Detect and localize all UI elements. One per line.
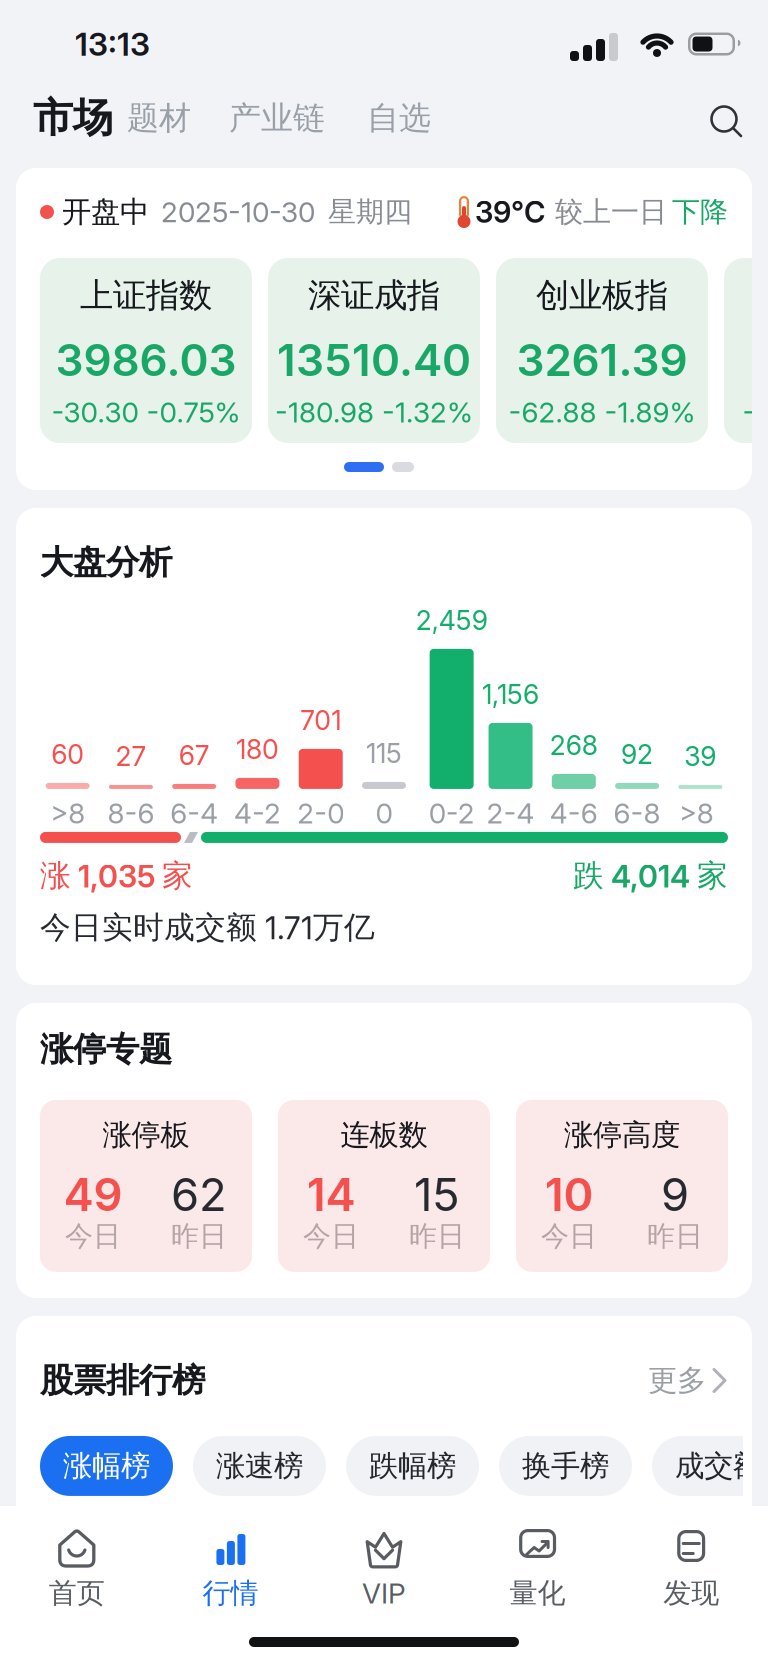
staticText: 涨停板 [102, 1117, 189, 1153]
staticText: 量化 [510, 1576, 566, 1610]
staticText: 13510.40 [277, 334, 471, 386]
staticText: 今日 [303, 1219, 359, 1253]
staticText: 2-4 [486, 797, 534, 830]
staticText: 9 [661, 1168, 689, 1221]
staticText: 39°C [475, 195, 545, 229]
staticText: 星期四 [328, 195, 412, 229]
staticText: 较上一日 [555, 195, 667, 229]
button[interactable]: 深证成指 [268, 258, 480, 443]
staticText: 连板数 [340, 1117, 427, 1153]
button[interactable]: 产业链 [229, 98, 325, 138]
staticText: -62.88 -1.89% [508, 396, 695, 429]
button[interactable]: 涨速榜 [193, 1436, 326, 1496]
staticText: 92 [621, 738, 653, 770]
staticText: 49 [63, 1168, 122, 1221]
staticText: 创业板指 [536, 275, 668, 316]
staticText: 4-2 [234, 797, 281, 830]
staticText: 15 [414, 1168, 460, 1221]
staticText: 涨停专题 [40, 1029, 172, 1070]
staticText: 首页 [49, 1576, 105, 1610]
button[interactable]: 跌幅榜 [346, 1436, 479, 1496]
staticText: 题材 [127, 98, 191, 138]
staticText: 昨日 [647, 1219, 703, 1253]
staticText: 涨速榜 [216, 1448, 303, 1484]
staticText: 跌幅榜 [369, 1448, 456, 1484]
staticText: 涨幅榜 [63, 1448, 150, 1484]
staticText: 3261.39 [516, 334, 687, 386]
staticText: 成交额 [675, 1448, 762, 1484]
button[interactable]: 自选 [367, 98, 431, 138]
button[interactable]: 市场 [33, 93, 113, 142]
staticText: 产业链 [229, 98, 325, 138]
staticText: 2-0 [297, 797, 344, 830]
button[interactable]: VIP [307, 1521, 461, 1610]
staticText: 268 [550, 729, 598, 761]
button[interactable]: 题材 [127, 98, 191, 138]
button[interactable]: 创业板指 [496, 258, 708, 443]
staticText: 上证指数 [80, 275, 212, 316]
button[interactable]: 涨幅榜 [40, 1436, 173, 1496]
staticText: 115 [366, 737, 402, 769]
staticText: 39 [684, 740, 716, 772]
staticText: 股票排行榜 [40, 1360, 205, 1401]
staticText: >8 [50, 797, 85, 830]
staticText: 开盘中 [62, 194, 149, 230]
button[interactable]: 搜索 [708, 100, 744, 136]
staticText: 昨日 [171, 1219, 227, 1253]
staticText: 今日 [541, 1219, 597, 1253]
button[interactable]: 涨停高度 [516, 1100, 728, 1272]
staticText: 跌 4,014 家 [573, 857, 728, 895]
staticText: -8.03 -0.89% [742, 396, 768, 429]
staticText: 2025-10-30 [161, 195, 315, 228]
staticText: 涨停高度 [564, 1117, 680, 1153]
button[interactable]: 连板数 [278, 1100, 490, 1272]
staticText: 60 [51, 738, 84, 770]
button[interactable]: 涨停板 [40, 1100, 252, 1272]
staticText: 下降 [672, 195, 728, 229]
staticText: 0 [375, 797, 392, 830]
staticText: 发现 [663, 1576, 719, 1610]
staticText: 14 [306, 1168, 355, 1221]
staticText: 10 [544, 1168, 593, 1221]
button[interactable]: 量化 [461, 1520, 614, 1610]
button[interactable]: 换手榜 [499, 1436, 632, 1496]
staticText: 自选 [367, 98, 431, 138]
staticText: 市场 [33, 93, 113, 142]
staticText: 1,156 [482, 678, 539, 710]
staticText: 更多 [648, 1362, 706, 1398]
staticText: 180 [236, 733, 279, 765]
staticText: 今日实时成交额 1.71万亿 [40, 909, 375, 946]
staticText: 67 [179, 739, 210, 771]
staticText: 4-6 [550, 797, 598, 830]
staticText: 8-6 [107, 797, 154, 830]
staticText: 深证成指 [308, 275, 440, 316]
staticText: 62 [171, 1168, 227, 1221]
button[interactable]: 科创50 [724, 258, 768, 443]
staticText: 0-2 [429, 797, 475, 830]
staticText: 换手榜 [522, 1448, 609, 1484]
button[interactable]: 首页 [0, 1520, 154, 1610]
staticText: 3986.03 [55, 334, 236, 386]
staticText: VIP [362, 1577, 406, 1610]
button[interactable]: 成交额 [652, 1436, 768, 1496]
staticText: 今日 [65, 1219, 121, 1253]
staticText: >8 [679, 797, 722, 830]
staticText: 27 [115, 740, 146, 772]
staticText: 昨日 [409, 1219, 465, 1253]
staticText: 701 [300, 704, 341, 736]
staticText: 6-4 [170, 797, 218, 830]
staticText: 大盘分析 [40, 542, 172, 583]
staticText: 涨 1,035 家 [40, 857, 193, 895]
button[interactable]: 行情 [154, 1520, 307, 1610]
staticText: 6-8 [614, 797, 661, 830]
button[interactable]: 发现 [614, 1520, 768, 1610]
staticText: 行情 [202, 1576, 258, 1610]
staticText: -30.30 -0.75% [51, 396, 240, 429]
button[interactable]: 更多 [648, 1362, 728, 1398]
staticText: 2,459 [416, 604, 488, 636]
staticText: 13:13 [75, 25, 150, 63]
staticText: -180.98 -1.32% [275, 396, 473, 429]
button[interactable]: 上证指数 [40, 258, 252, 443]
